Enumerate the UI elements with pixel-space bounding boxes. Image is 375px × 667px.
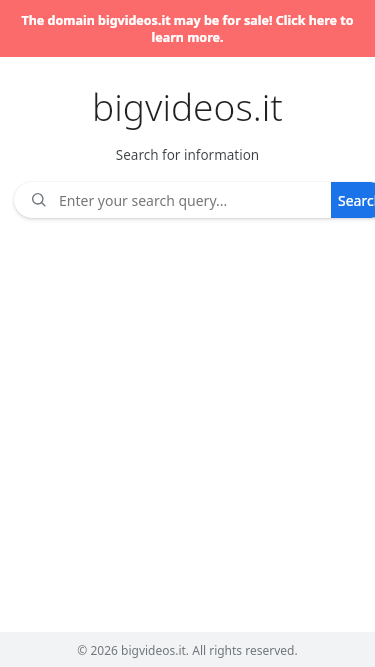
button[interactable]: The domain bigvideos.it may be for sale!… xyxy=(0,0,375,57)
button[interactable]: Search xyxy=(331,182,375,218)
staticText: Search for information xyxy=(0,146,375,164)
staticText: The domain bigvideos.it may be for sale!… xyxy=(18,12,357,45)
staticText: Search xyxy=(338,191,375,210)
staticText: © 2026 bigvideos.it. All rights reserved… xyxy=(77,642,298,658)
staticText: bigvideos.it xyxy=(0,81,375,131)
staticText: Enter your search query... xyxy=(59,191,228,210)
button[interactable]: Enter your search query... xyxy=(14,182,331,218)
